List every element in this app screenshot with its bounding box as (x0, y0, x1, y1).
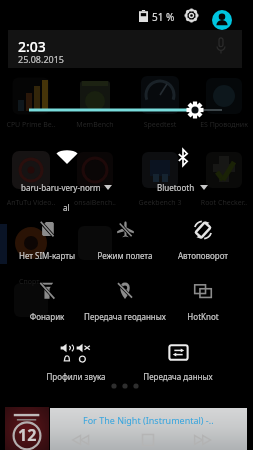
staticText: ES Проводник (184, 120, 253, 130)
button[interactable]: User account (212, 10, 232, 30)
staticText: 25.08.2015 (18, 53, 65, 65)
staticText: Автоповорот (133, 250, 253, 261)
button[interactable]: Профили звука (37, 341, 115, 391)
staticText: Geekbench 3 (120, 198, 200, 208)
button[interactable]: Автоповорот (164, 220, 242, 270)
staticText: HotKnot (133, 311, 253, 322)
button[interactable]: Stop (134, 432, 162, 448)
staticText: Нет SIM-карты (0, 250, 117, 261)
staticText: CPU Prime Be.. (0, 120, 71, 130)
staticText: Режим полета (55, 250, 195, 261)
staticText: Фонарик (0, 311, 117, 322)
button[interactable]: Передача данных (139, 341, 217, 391)
staticText: Спорт.. (0, 277, 71, 287)
staticText: 51 % (152, 10, 175, 24)
staticText: For The Night (Instrumental) -.. (83, 414, 214, 426)
button[interactable]: Режим полета (86, 220, 164, 270)
staticText: baru-baru-very-norm (21, 182, 101, 193)
staticText: MemBench (55, 120, 135, 130)
button[interactable]: baru-baru-very-norm (8, 140, 125, 212)
staticText: AnTuTu Video.. (0, 198, 71, 208)
button[interactable]: Нет SIM-карты (8, 220, 86, 270)
button[interactable]: HotKnot (164, 281, 242, 331)
button[interactable]: Next (191, 432, 221, 448)
staticText: Передача данных (108, 371, 248, 382)
staticText: Root Checker.. (184, 198, 253, 208)
staticText: 2:03 (18, 37, 46, 56)
staticText: Профили звука (6, 371, 146, 382)
button[interactable]: Settings (184, 8, 199, 23)
button[interactable]: Bluetooth (125, 140, 242, 212)
staticText: Передача геоданных (55, 311, 195, 322)
button[interactable]: Фонарик (8, 281, 86, 331)
staticText: al (63, 202, 70, 213)
button[interactable]: Brightness (0, 96, 253, 126)
staticText: onsaiBench.. (55, 198, 135, 208)
staticText: Bluetooth (157, 182, 195, 193)
button[interactable]: Передача геоданных (86, 281, 164, 331)
staticText: Speedtest (120, 120, 200, 130)
button[interactable]: Previous (70, 432, 100, 448)
button[interactable]: Voice search (214, 36, 228, 55)
staticText: 12 (18, 424, 37, 446)
